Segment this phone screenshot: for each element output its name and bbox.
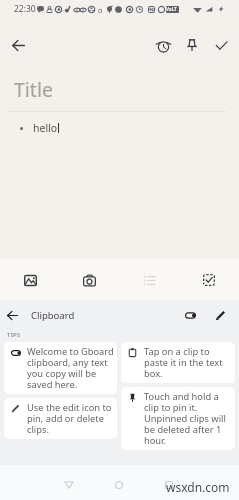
button[interactable]: Use the edit icon to pin, add or delete … [4,398,117,439]
button[interactable]: Clipboard on/off [178,303,202,327]
staticText: Title [14,76,53,103]
staticText: Use the edit icon to pin, add or delete … [27,401,115,436]
staticText: hello [33,121,58,135]
button[interactable]: Checkboxes [195,266,223,294]
staticText: g [98,6,103,13]
staticText: Welcome to Gboard clipboard, any text yo… [27,345,115,391]
button[interactable]: Pin [178,31,206,59]
staticText: 22:30 [14,3,36,15]
staticText: Clipboard [31,309,75,322]
button[interactable]: Touch and hold a clip to pin it. Unpinne… [121,387,235,450]
button[interactable]: Recent apps [157,473,181,497]
staticText: TIPS [7,331,21,339]
button[interactable]: Back [5,32,31,58]
button[interactable]: Bulleted list [135,266,163,294]
button[interactable]: Tap on a clip to paste it in the text bo… [121,342,235,383]
button[interactable]: Back [57,473,81,497]
button[interactable]: Home [107,473,131,497]
staticText: wsxdn.com [166,479,230,495]
button[interactable]: Edit clips [208,303,232,327]
staticText: Tap on a clip to paste it in the text bo… [144,345,233,380]
button[interactable]: Add image [16,266,44,294]
staticText: Touch and hold a clip to pin it. Unpinne… [144,390,233,447]
staticText: VoLTE [166,6,179,13]
button[interactable]: Reminder [149,31,177,59]
button[interactable]: Take photo [75,266,103,294]
button[interactable]: Welcome to Gboard clipboard, any text yo… [4,342,117,394]
button[interactable]: Done [207,31,235,59]
button[interactable]: Back [0,303,24,327]
